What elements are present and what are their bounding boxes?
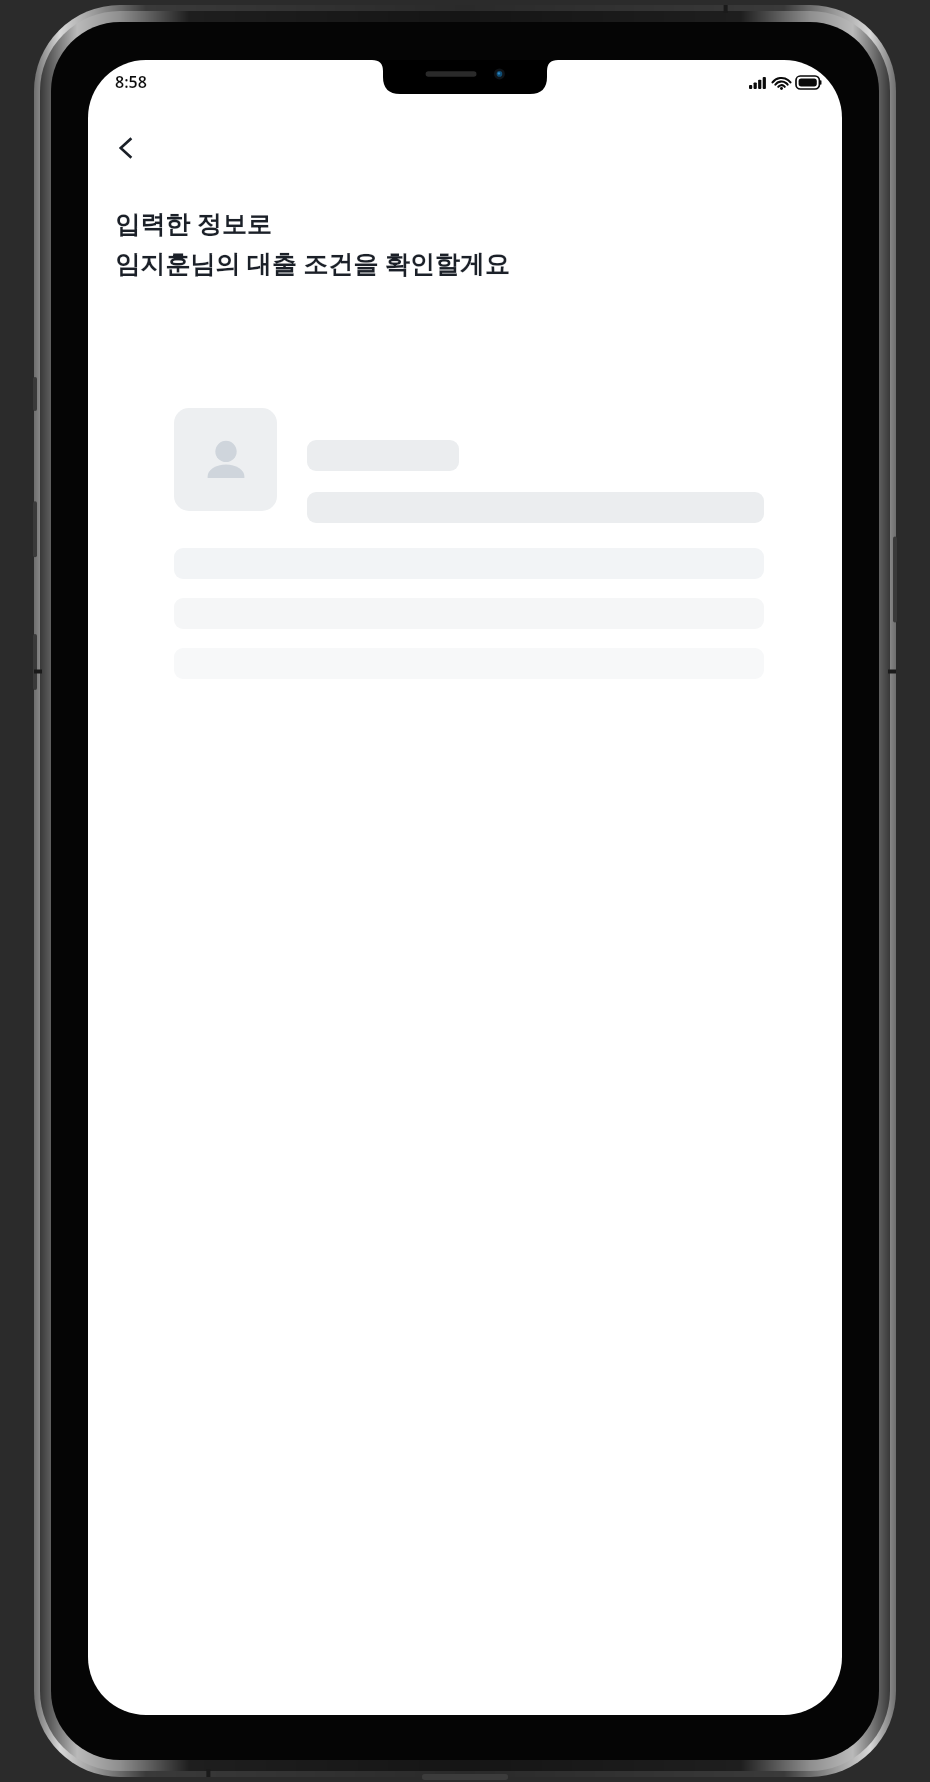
staticText: 8:58 bbox=[115, 71, 147, 93]
staticText: 임지훈님의 대출 조건을 확인할게요 bbox=[115, 246, 510, 280]
staticText: 입력한 정보로 bbox=[115, 206, 272, 240]
button[interactable]: Back bbox=[102, 124, 150, 172]
